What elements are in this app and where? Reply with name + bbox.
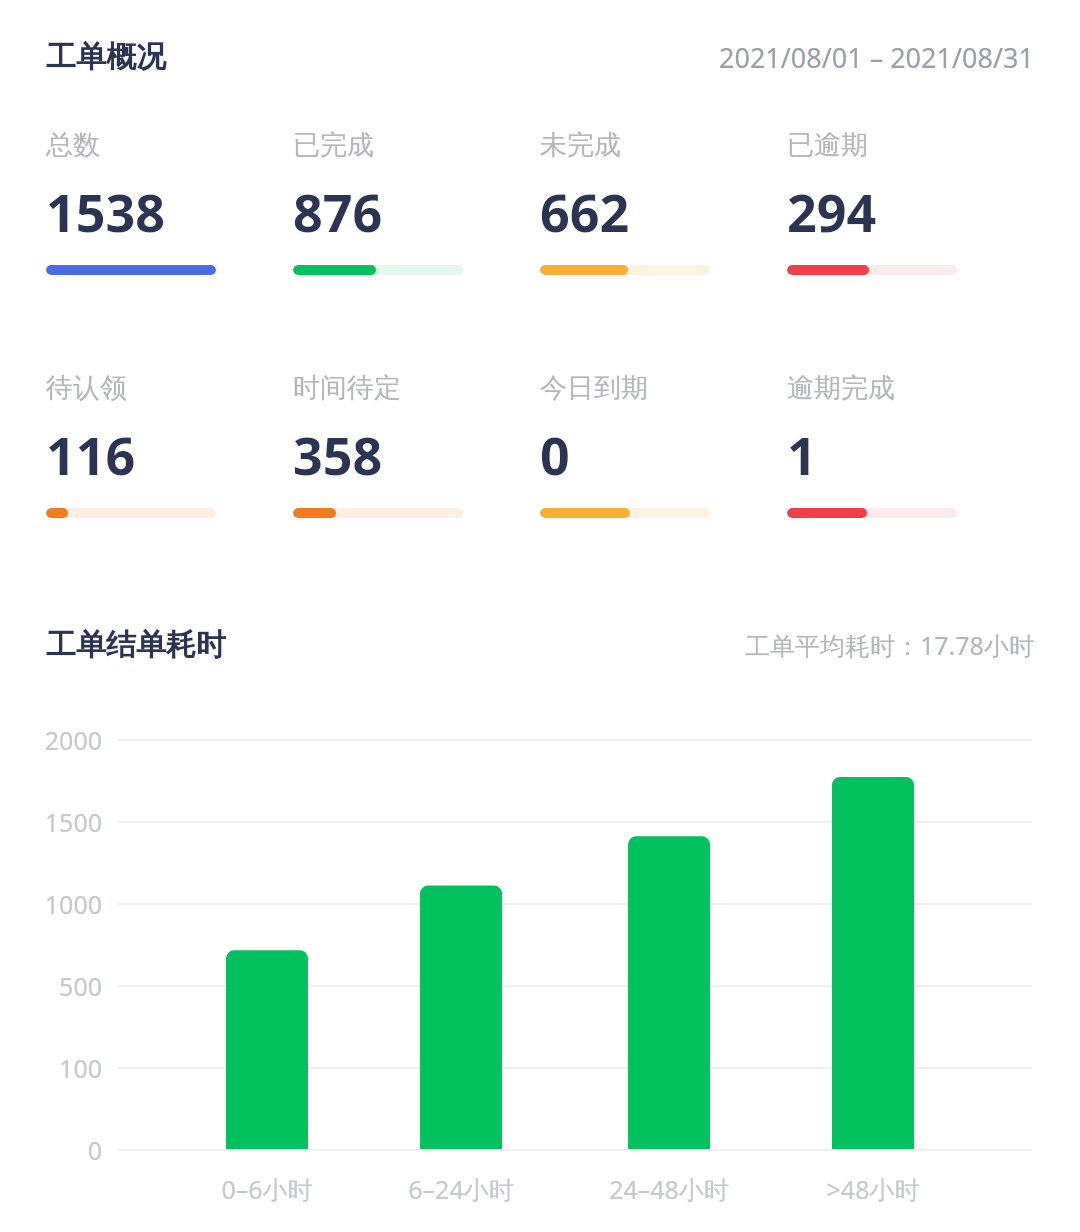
staticText: 总数 (46, 128, 100, 162)
staticText: 2000 (20, 723, 102, 757)
staticText: >48小时 (773, 1172, 973, 1206)
staticText: 24–48小时 (569, 1172, 769, 1206)
button[interactable]: 时间待定 (293, 371, 522, 518)
button[interactable]: 已逾期 (787, 128, 1016, 275)
button[interactable]: 逾期完成 (787, 371, 1016, 518)
staticText: 今日到期 (540, 371, 648, 405)
staticText: 294 (787, 176, 877, 247)
button[interactable]: 已完成 (293, 128, 522, 275)
staticText: 工单结单耗时 (46, 626, 226, 664)
button[interactable]: 未完成 (540, 128, 769, 275)
button[interactable]: 2021/08/01 – 2021/08/31 (719, 39, 1034, 76)
staticText: 已完成 (293, 128, 374, 162)
staticText: 工单平均耗时：17.78小时 (745, 628, 1034, 662)
staticText: 100 (20, 1051, 102, 1085)
button[interactable]: 今日到期 (540, 371, 769, 518)
staticText: 待认领 (46, 371, 127, 405)
staticText: 已逾期 (787, 128, 868, 162)
staticText: 876 (293, 176, 383, 247)
staticText: 1538 (46, 176, 165, 247)
staticText: 未完成 (540, 128, 621, 162)
staticText: 1500 (20, 805, 102, 839)
staticText: 工单概况 (46, 38, 166, 76)
staticText: 0 (20, 1133, 102, 1167)
staticText: 时间待定 (293, 371, 401, 405)
staticText: 6–24小时 (361, 1172, 561, 1206)
staticText: 1000 (20, 887, 102, 921)
staticText: 0–6小时 (167, 1172, 367, 1206)
staticText: 逾期完成 (787, 371, 895, 405)
button[interactable]: 总数 (46, 128, 275, 275)
staticText: 1 (787, 419, 817, 490)
staticText: 116 (46, 419, 136, 490)
staticText: 358 (293, 419, 383, 490)
staticText: 500 (20, 969, 102, 1003)
staticText: 662 (540, 176, 630, 247)
button[interactable]: 待认领 (46, 371, 275, 518)
staticText: 0 (540, 419, 570, 490)
